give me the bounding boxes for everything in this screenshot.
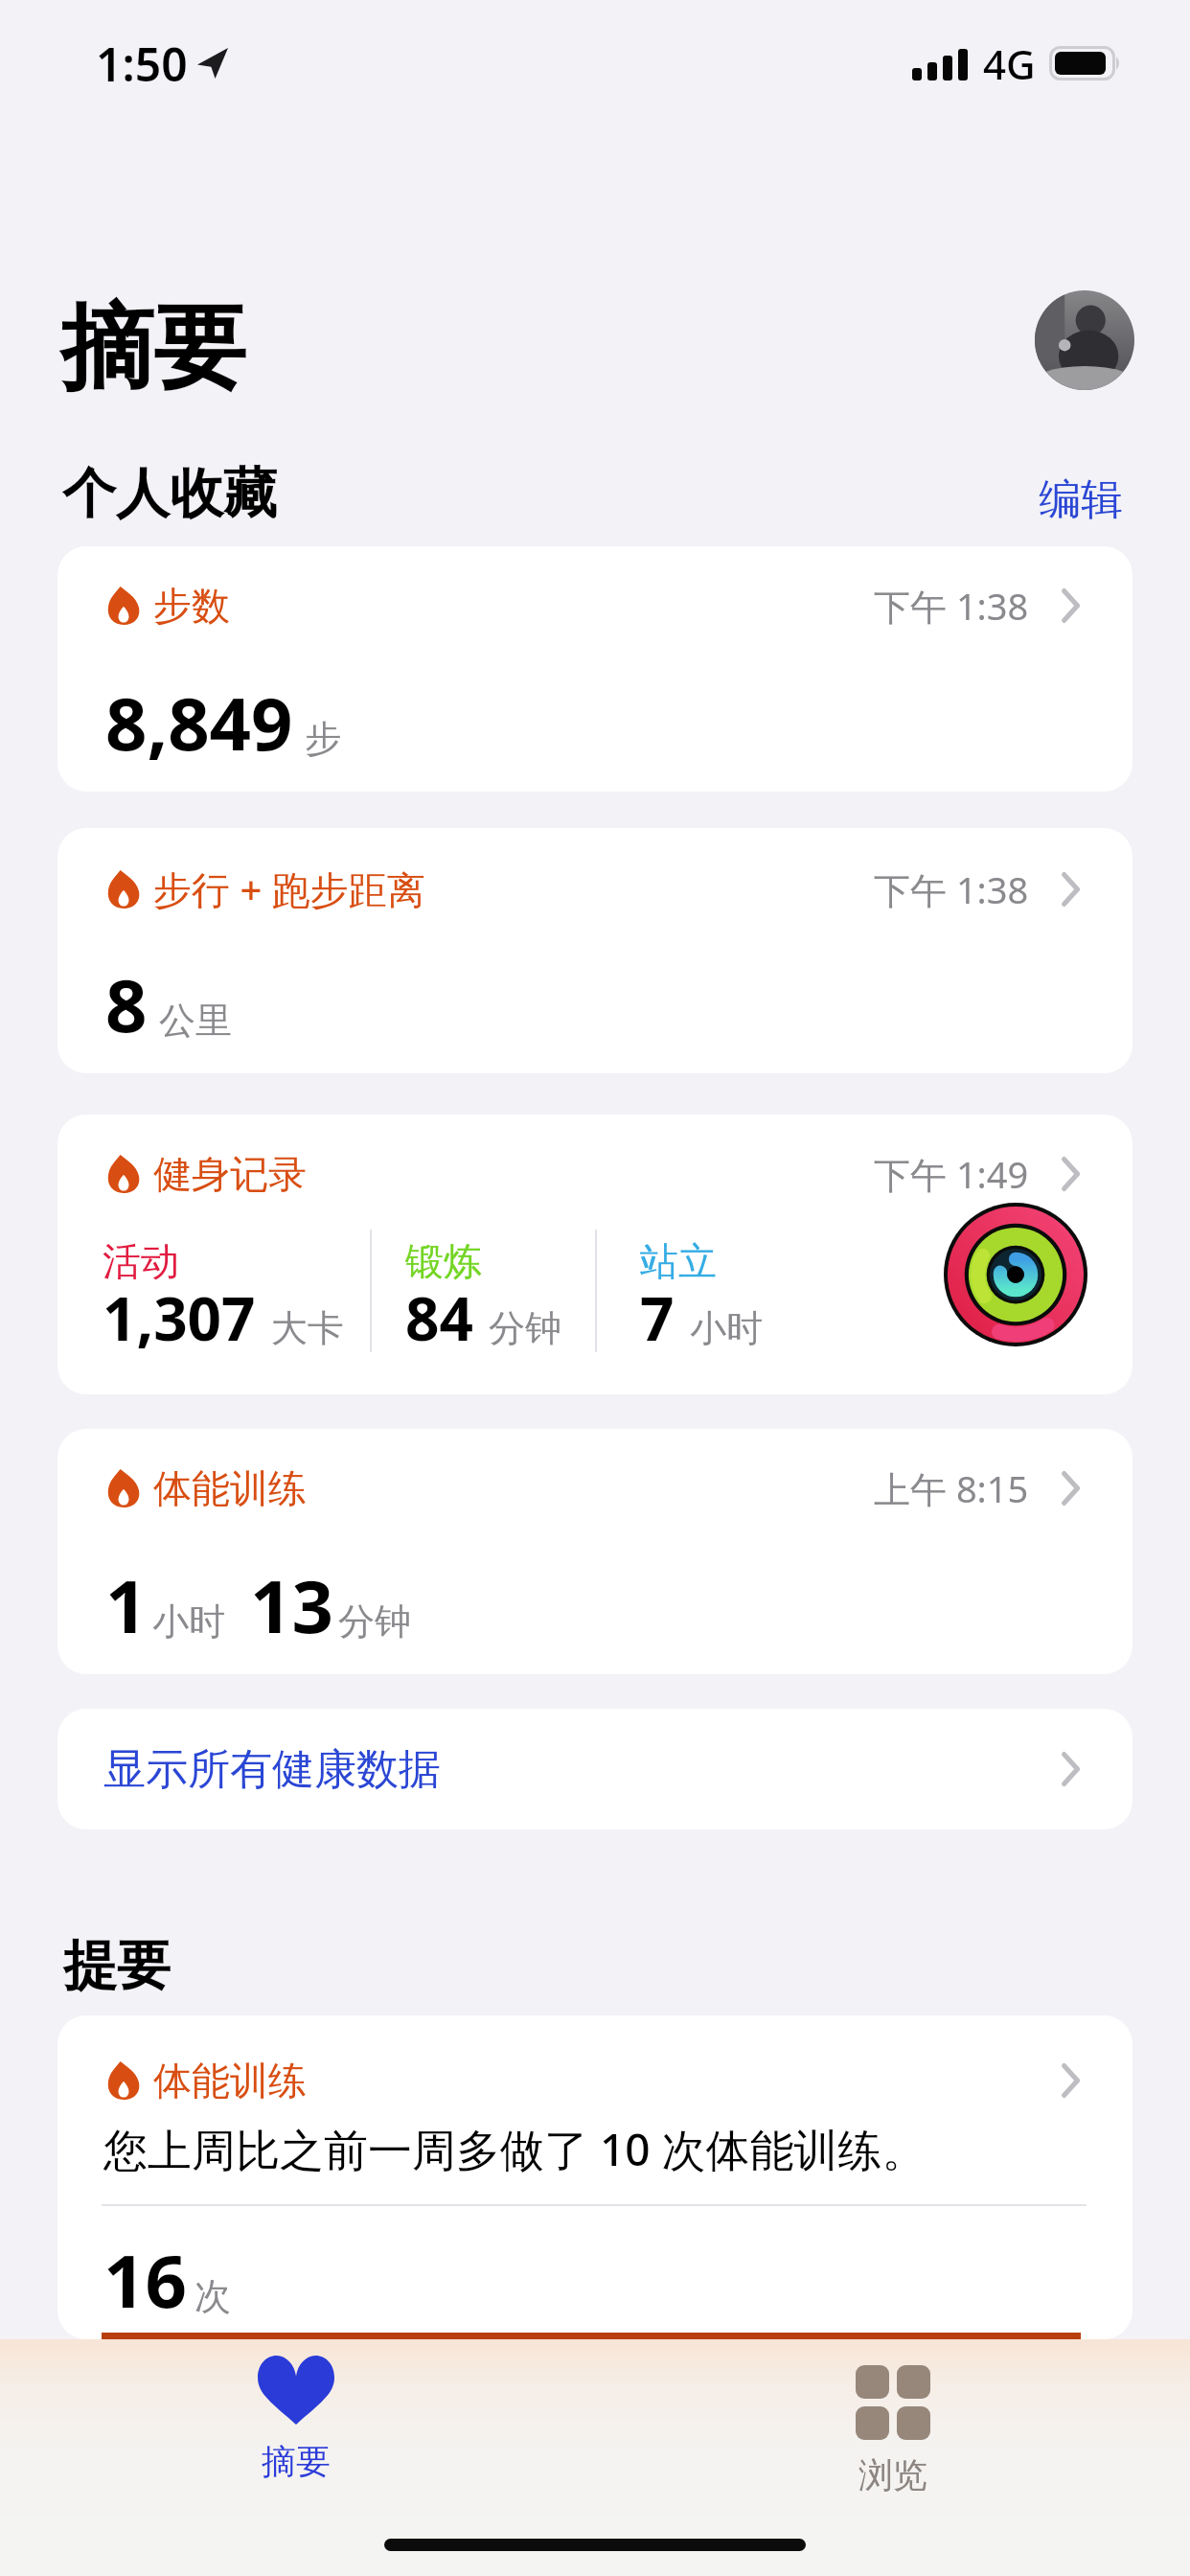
- button[interactable]: 编辑: [1039, 473, 1123, 526]
- button[interactable]: 步行 + 跑步距离: [57, 828, 1133, 1073]
- staticText: 4G: [983, 36, 1036, 91]
- staticText: 显示所有健康数据: [103, 1743, 441, 1796]
- staticText: 摘要: [262, 2440, 331, 2483]
- staticText: 锻炼: [405, 1237, 482, 1285]
- staticText: 浏览: [858, 2453, 927, 2496]
- staticText: 16: [103, 2230, 187, 2330]
- button[interactable]: 摘要: [210, 2356, 382, 2483]
- staticText: 次: [195, 2273, 231, 2319]
- staticText: 8: [105, 954, 148, 1054]
- staticText: 1,307: [103, 1277, 256, 1358]
- staticText: 公里: [159, 998, 232, 1044]
- staticText: 步数: [153, 582, 230, 630]
- button[interactable]: 浏览: [807, 2356, 979, 2496]
- staticText: 体能训练: [153, 2057, 307, 2104]
- staticText: 步: [305, 716, 341, 762]
- staticText: 分钟: [489, 1305, 561, 1351]
- staticText: 8,849: [105, 673, 293, 772]
- staticText: 下午 1:38: [874, 864, 1029, 914]
- staticText: 健身记录: [153, 1150, 307, 1198]
- staticText: 小时: [152, 1598, 225, 1644]
- button[interactable]: [1035, 290, 1134, 390]
- staticText: 分钟: [338, 1598, 411, 1644]
- staticText: 7: [640, 1277, 675, 1358]
- staticText: 小时: [690, 1305, 763, 1351]
- staticText: 个人收藏: [62, 460, 277, 528]
- staticText: 下午 1:49: [874, 1149, 1029, 1199]
- staticText: 13: [250, 1555, 333, 1655]
- button[interactable]: 体能训练: [57, 1429, 1133, 1674]
- staticText: 摘要: [60, 290, 246, 407]
- staticText: 您上周比之前一周多做了 10 次体能训练。: [103, 2119, 927, 2179]
- button[interactable]: 健身记录: [57, 1115, 1133, 1394]
- staticText: 步行 + 跑步距离: [153, 862, 425, 915]
- staticText: 下午 1:38: [874, 581, 1029, 631]
- button[interactable]: 显示所有健康数据: [57, 1709, 1133, 1829]
- staticText: 1:50: [96, 33, 188, 94]
- staticText: 活动: [103, 1237, 179, 1285]
- staticText: 体能训练: [153, 1464, 307, 1512]
- staticText: 提要: [63, 1932, 171, 2000]
- button[interactable]: 步数: [57, 546, 1133, 792]
- button[interactable]: 体能训练: [57, 2015, 1133, 2339]
- staticText: 1: [105, 1555, 148, 1655]
- staticText: 大卡: [271, 1305, 344, 1351]
- staticText: 84: [405, 1277, 473, 1358]
- staticText: 站立: [640, 1237, 717, 1285]
- staticText: 上午 8:15: [874, 1463, 1029, 1513]
